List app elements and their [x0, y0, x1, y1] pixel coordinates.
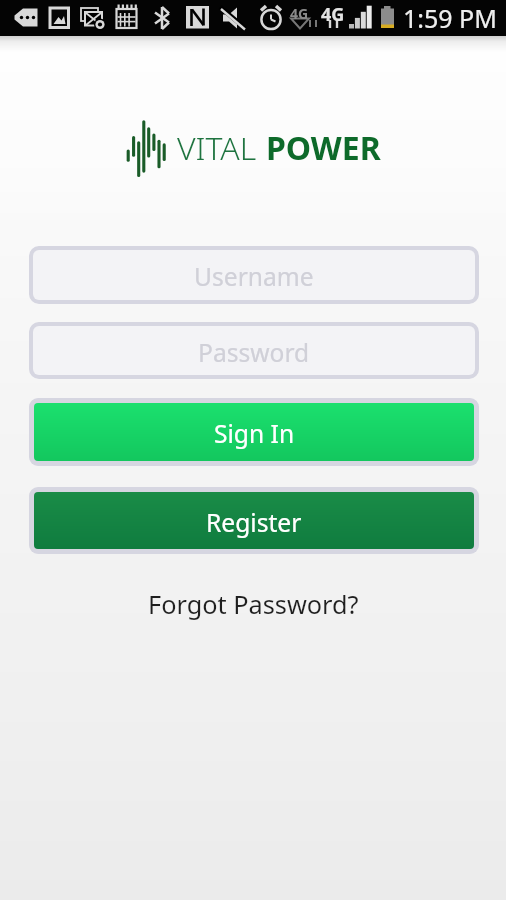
staticText: Username — [194, 260, 314, 294]
button[interactable]: Sign In — [29, 398, 479, 466]
staticText: Forgot Password? — [148, 587, 359, 621]
button[interactable]: Register — [29, 487, 479, 554]
staticText: POWER — [266, 126, 381, 170]
staticText: 4G — [290, 4, 309, 23]
button[interactable]: Username — [29, 246, 479, 304]
staticText: VITAL — [177, 126, 257, 170]
staticText: 4G — [321, 2, 345, 27]
button[interactable]: Password — [29, 322, 479, 379]
staticText: 1:59 PM — [403, 1, 497, 35]
button[interactable]: Forgot Password? — [138, 580, 369, 628]
staticText: Sign In — [214, 417, 295, 451]
staticText: Password — [198, 336, 310, 370]
staticText: Register — [206, 506, 302, 540]
